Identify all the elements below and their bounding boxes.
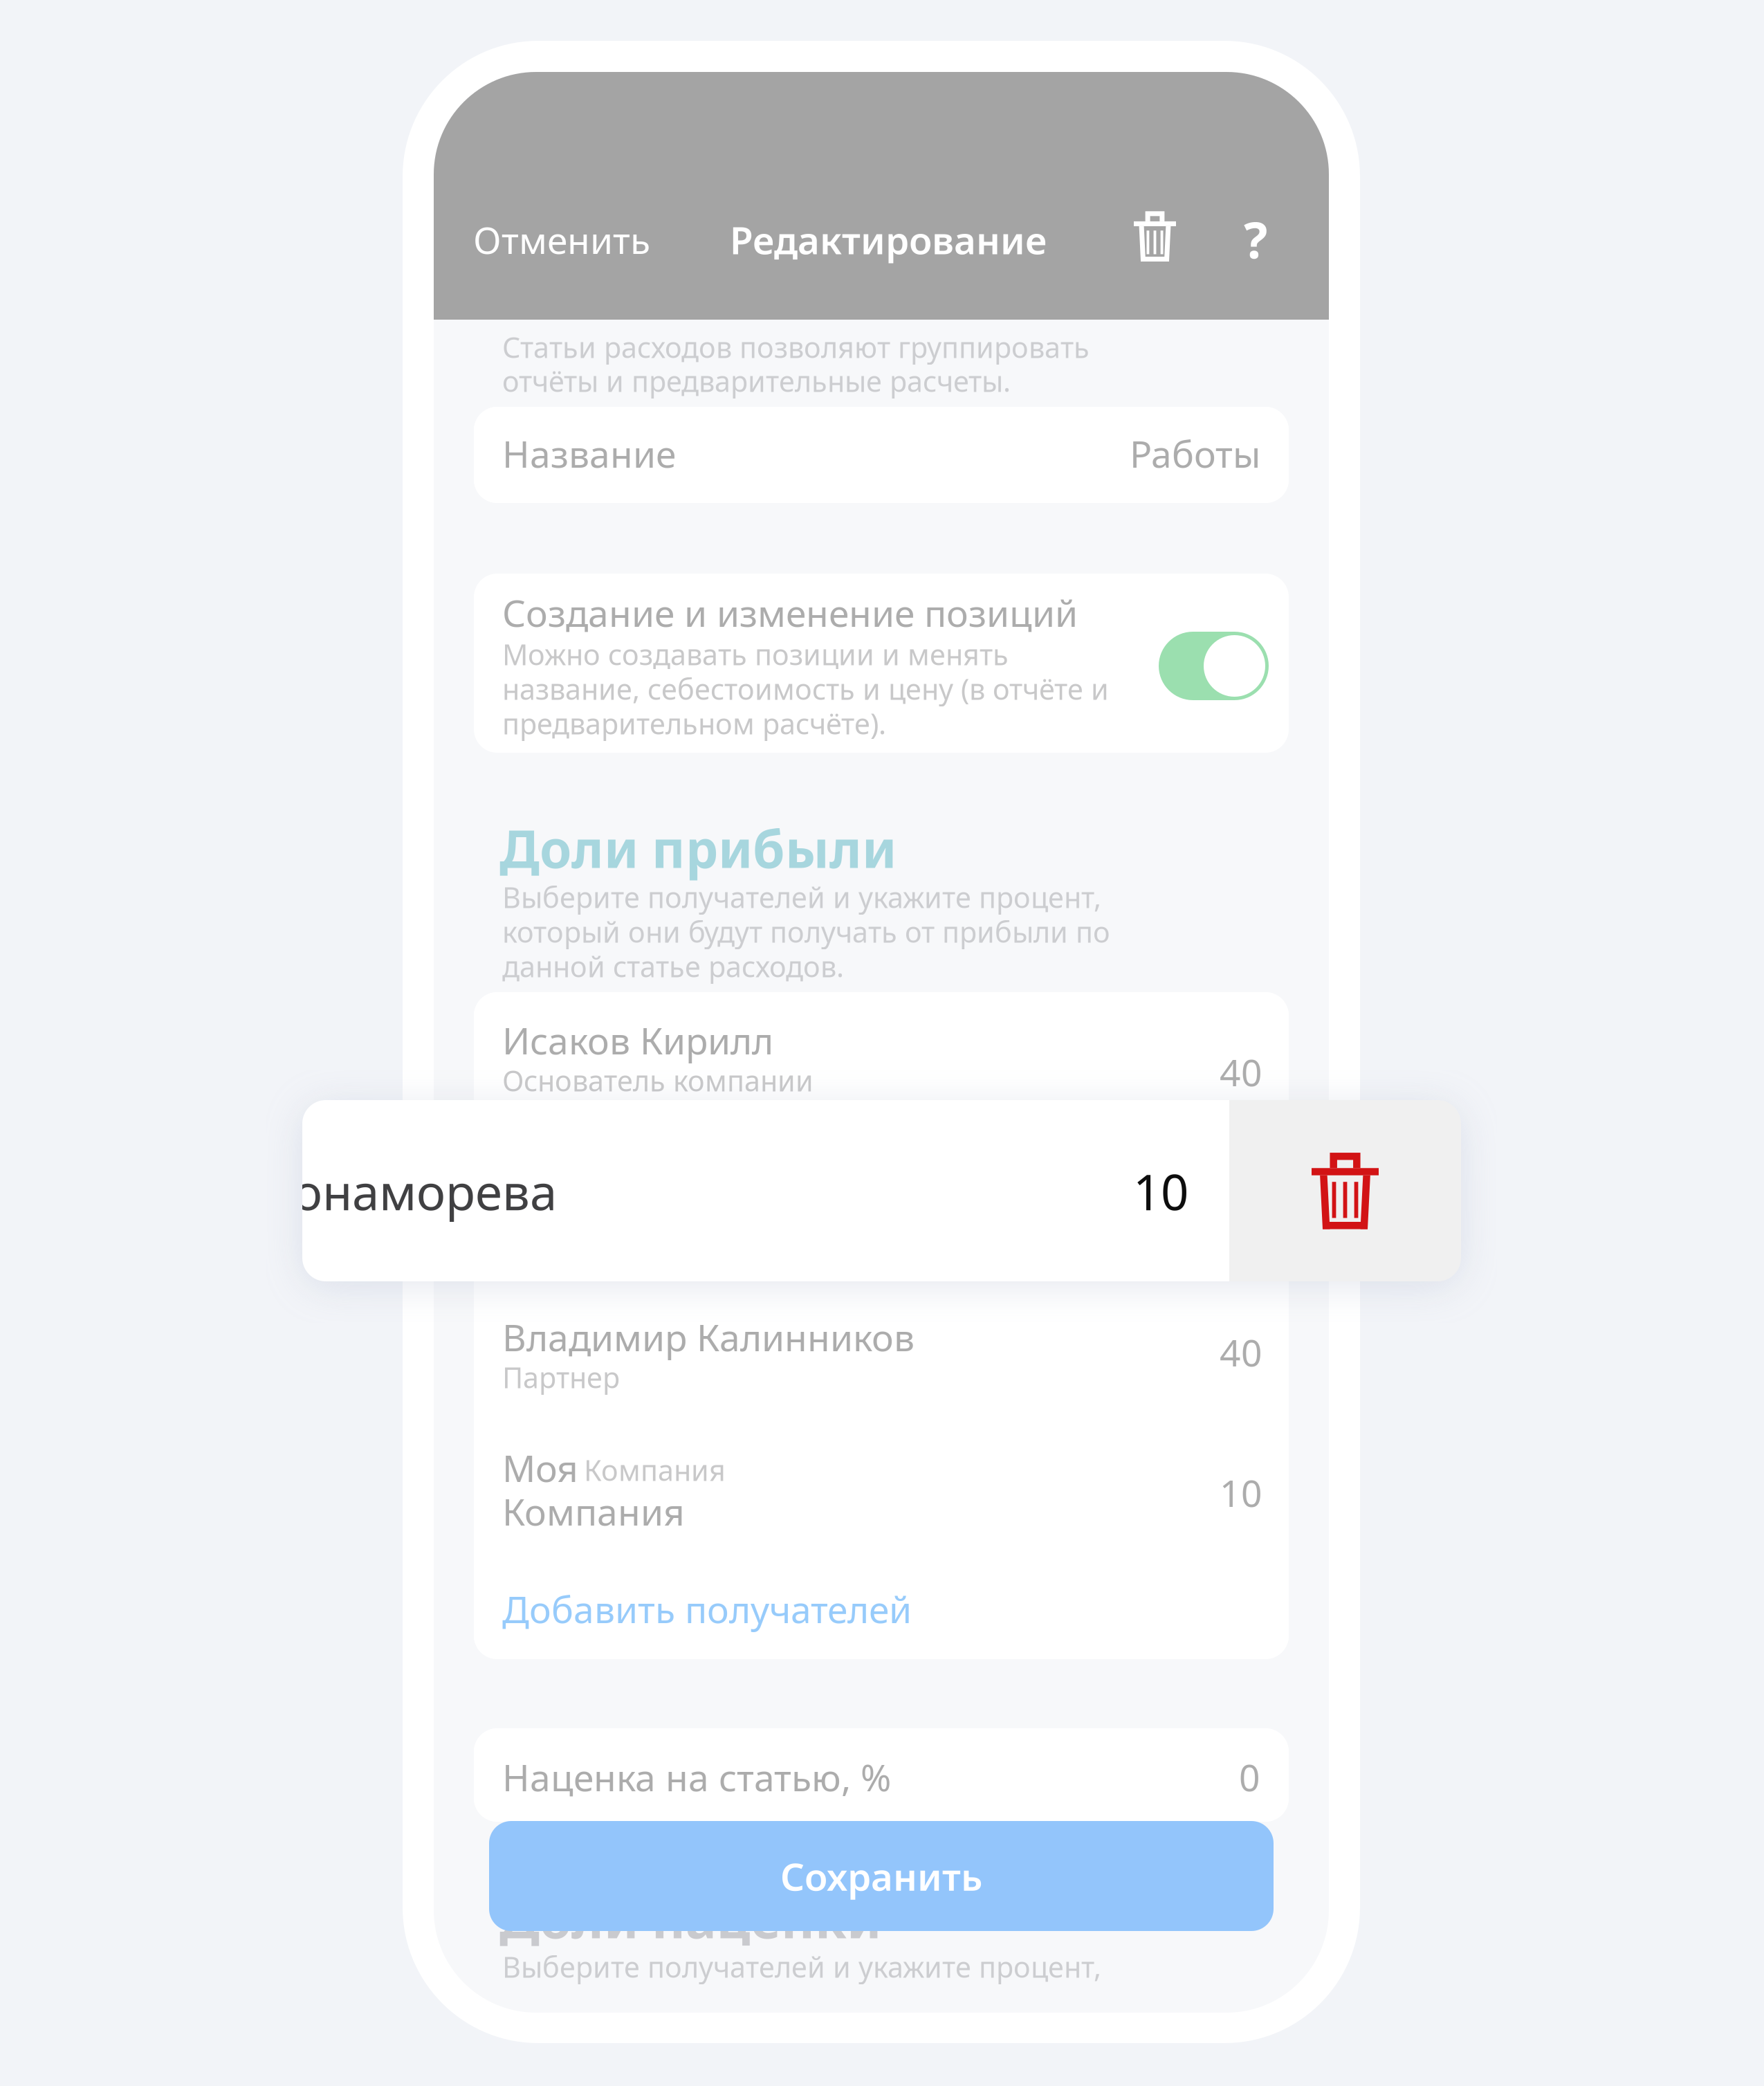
button[interactable]: Отменить xyxy=(466,200,657,279)
staticText: 0 xyxy=(1239,1753,1260,1802)
staticText: Владимир Калинников xyxy=(502,1312,915,1361)
staticText: 40 xyxy=(1220,1047,1262,1096)
button[interactable]: Название xyxy=(474,407,1289,503)
staticText: Выберите получателей и укажите процент, xyxy=(502,878,1101,916)
staticText: Выберите получателей и укажите процент, xyxy=(502,1948,1101,1986)
button[interactable]: Сохранить xyxy=(489,1821,1274,1931)
button[interactable]: Удалить xyxy=(1229,1100,1461,1281)
button[interactable]: Владимир Калинников xyxy=(474,1289,1289,1437)
staticText: Исаков Кирилл xyxy=(502,1016,773,1065)
button[interactable]: Создание и изменение позиций xyxy=(1159,632,1269,700)
staticText: Компания xyxy=(502,1487,685,1536)
staticText: отчёты и предварительные расчеты. xyxy=(502,362,1011,400)
staticText: Пономарева Светлана xyxy=(502,1164,905,1213)
staticText: Добавить получателей xyxy=(502,1584,912,1633)
staticText: 10 xyxy=(1133,1159,1188,1224)
staticText: Доли наценки xyxy=(499,1884,881,1953)
button[interactable]: Исаков Кирилл xyxy=(474,992,1289,1140)
staticText: Отменить xyxy=(473,215,650,264)
staticText: название, себестоимость и цену (в отчёте… xyxy=(502,670,1109,708)
staticText: Дизайнер xyxy=(502,1209,639,1247)
staticText: Партнер xyxy=(502,1358,620,1396)
staticText: Работы xyxy=(1130,429,1260,478)
staticText: Сохранить xyxy=(780,1851,982,1901)
staticText: Доли прибыли xyxy=(499,814,897,882)
staticText: Создание и изменение позиций xyxy=(502,588,1078,637)
staticText: Моя xyxy=(502,1443,578,1492)
staticText: Основатель компании xyxy=(502,1061,814,1099)
button[interactable]: Справка xyxy=(1221,194,1290,285)
staticText: Редактирование xyxy=(730,214,1047,265)
staticText: 10 xyxy=(1220,1468,1262,1517)
staticText: Статьи расходов позволяют группировать xyxy=(502,328,1090,366)
button[interactable]: Редактирование xyxy=(723,199,1054,280)
button[interactable]: Добавить получателей xyxy=(474,1583,1289,1659)
button[interactable]: Пономарева Светлана xyxy=(474,1140,1289,1288)
button[interactable]: Удалить xyxy=(1117,194,1193,278)
staticText: 10 xyxy=(1220,1179,1262,1228)
staticText: Название xyxy=(502,429,676,478)
staticText: Можно создавать позиции и менять xyxy=(502,635,1009,673)
staticText: предварительном расчёте). xyxy=(502,704,886,742)
staticText: данной статье расходов. xyxy=(502,947,844,985)
staticText: Компания xyxy=(584,1451,726,1489)
staticText: 40 xyxy=(1220,1328,1262,1377)
button[interactable]: Моя xyxy=(474,1438,1289,1583)
staticText: ? xyxy=(1244,206,1267,272)
button[interactable]: Наценка на статью, % xyxy=(474,1728,1289,1822)
staticText: Наценка на статью, % xyxy=(502,1753,891,1802)
staticText: онаморева xyxy=(293,1159,557,1224)
staticText: который они будут получать от прибыли по xyxy=(502,913,1110,951)
